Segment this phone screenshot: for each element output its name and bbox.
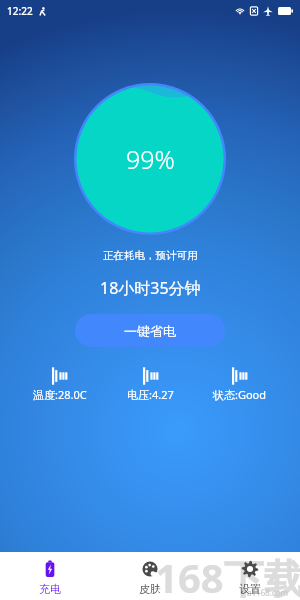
button[interactable]: 皮肤 xyxy=(100,556,200,600)
staticText: a1168.com xyxy=(247,587,289,598)
button[interactable]: 一键省电 xyxy=(75,314,225,347)
staticText: 12:22 xyxy=(7,4,33,18)
staticText: 18小时35分钟 xyxy=(100,277,201,299)
staticText: 温度:28.0C xyxy=(33,387,87,402)
button[interactable]: 设置 xyxy=(200,556,300,600)
staticText: 正在耗电，预计可用 xyxy=(103,249,198,262)
staticText: 状态:Good xyxy=(213,387,267,402)
staticText: 99% xyxy=(126,142,175,176)
staticText: 一键省电 xyxy=(124,323,176,339)
staticText: 设置 xyxy=(239,582,261,596)
staticText: 皮肤 xyxy=(139,582,161,596)
staticText: 168下载 xyxy=(155,550,300,598)
button[interactable]: 充电 xyxy=(0,556,100,600)
staticText: 充电 xyxy=(39,582,61,596)
staticText: 电压:4.27 xyxy=(127,387,174,402)
